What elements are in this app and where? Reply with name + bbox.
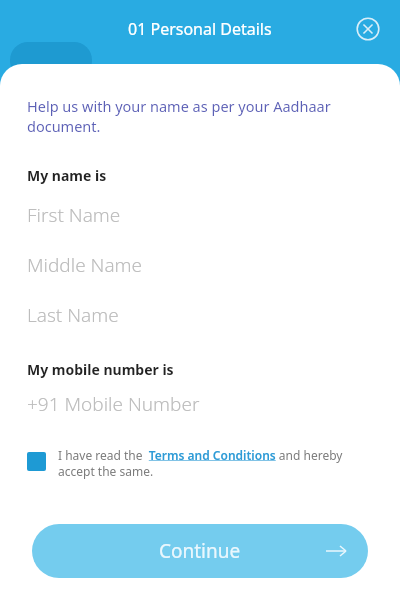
staticText: First Name xyxy=(27,202,121,228)
staticText: Help us with your name as per your Aadha… xyxy=(27,96,331,137)
staticText: I have read the Terms and Conditions and… xyxy=(58,447,373,480)
staticText: Middle Name xyxy=(27,252,143,278)
staticText: Continue xyxy=(159,538,241,564)
button[interactable]: Continue xyxy=(32,524,368,578)
button[interactable]: I have read the Terms and Conditions and… xyxy=(27,447,373,480)
button[interactable]: Middle Name xyxy=(27,252,373,278)
staticText: 01 Personal Details xyxy=(128,18,272,40)
button[interactable]: +91 Mobile Number xyxy=(27,391,373,417)
button[interactable]: Close xyxy=(354,15,382,43)
button[interactable]: First Name xyxy=(27,202,373,228)
staticText: My mobile number is xyxy=(27,360,174,379)
staticText: My name is xyxy=(27,166,107,185)
staticText: +91 Mobile Number xyxy=(27,391,200,417)
button[interactable]: Last Name xyxy=(27,302,373,328)
staticText: Last Name xyxy=(27,302,119,328)
